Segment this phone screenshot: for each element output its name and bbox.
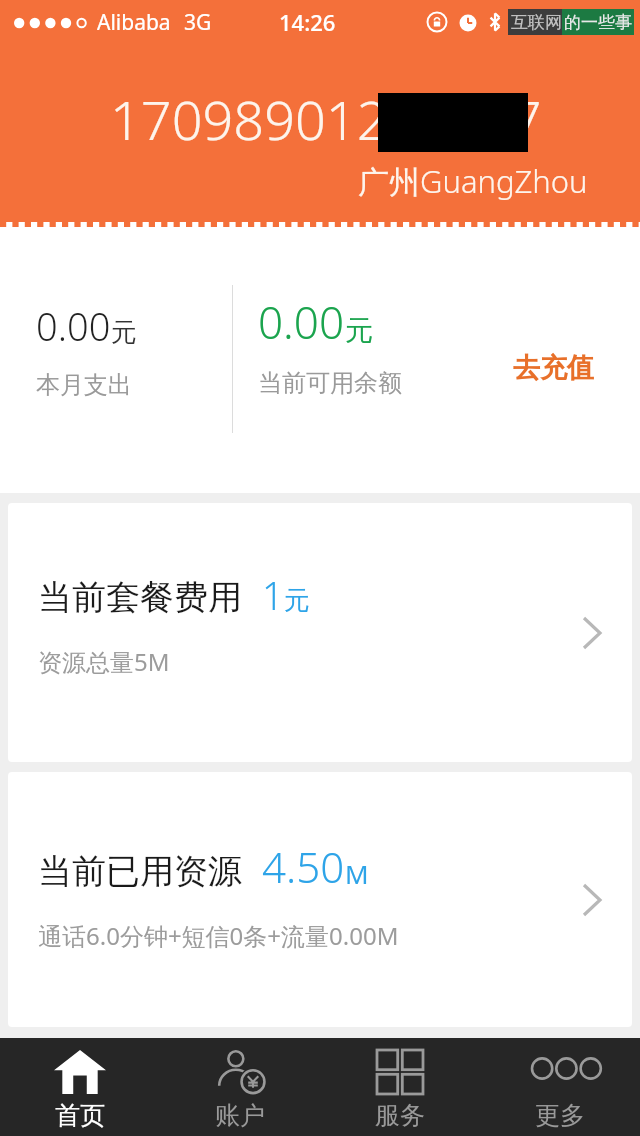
staticText: 服务 <box>375 1100 425 1131</box>
staticText: 17098901234567 <box>110 82 542 156</box>
other: 首页 Home <box>54 1050 106 1094</box>
button[interactable]: 首页 Home <box>0 1038 160 1136</box>
staticText: 0.00 <box>258 292 345 352</box>
staticText: 当前已用资源 <box>38 850 242 893</box>
staticText: 去充值 <box>513 351 594 385</box>
staticText: 互联网 <box>511 12 562 33</box>
button[interactable]: 账户 Account <box>160 1038 320 1136</box>
button[interactable]: 更多 More <box>480 1038 640 1136</box>
other: Rotation lock <box>426 11 448 33</box>
staticText: 的一些事 <box>564 12 632 33</box>
other: Bluetooth <box>488 11 502 33</box>
staticText: Alibaba <box>97 8 171 37</box>
staticText: 更多 <box>535 1100 585 1131</box>
staticText: 元 <box>284 584 310 617</box>
button[interactable]: 当前套餐费用 <box>8 503 632 762</box>
staticText: 首页 <box>55 1100 105 1131</box>
staticText: 14:26 <box>279 7 336 37</box>
staticText: 元 <box>111 316 137 349</box>
button[interactable]: 去充值 <box>480 340 626 396</box>
staticText: 资源总量5M <box>38 645 170 678</box>
staticText: 3G <box>184 8 212 37</box>
staticText: 账户 <box>215 1100 265 1131</box>
staticText: 0.00 <box>36 300 111 352</box>
other: 账户 Account <box>214 1050 266 1094</box>
staticText: 通话6.0分钟+短信0条+流量0.00M <box>38 919 399 952</box>
other: 更多 More <box>531 1050 589 1094</box>
staticText: 1 <box>262 569 284 621</box>
other: Alarm <box>457 11 479 33</box>
staticText: M <box>345 856 369 891</box>
staticText: 当前套餐费用 <box>38 576 242 619</box>
staticText: 本月支出 <box>36 370 132 400</box>
staticText: 53% <box>552 9 590 35</box>
button[interactable]: 服务 Services <box>320 1038 480 1136</box>
other: 服务 Services <box>377 1050 423 1094</box>
staticText: 当前可用余额 <box>258 368 402 398</box>
button[interactable]: 当前已用资源 <box>8 772 632 1027</box>
staticText: 4.50 <box>262 838 345 895</box>
staticText: 广州GuangZhou <box>358 160 588 202</box>
staticText: 元 <box>345 313 373 348</box>
